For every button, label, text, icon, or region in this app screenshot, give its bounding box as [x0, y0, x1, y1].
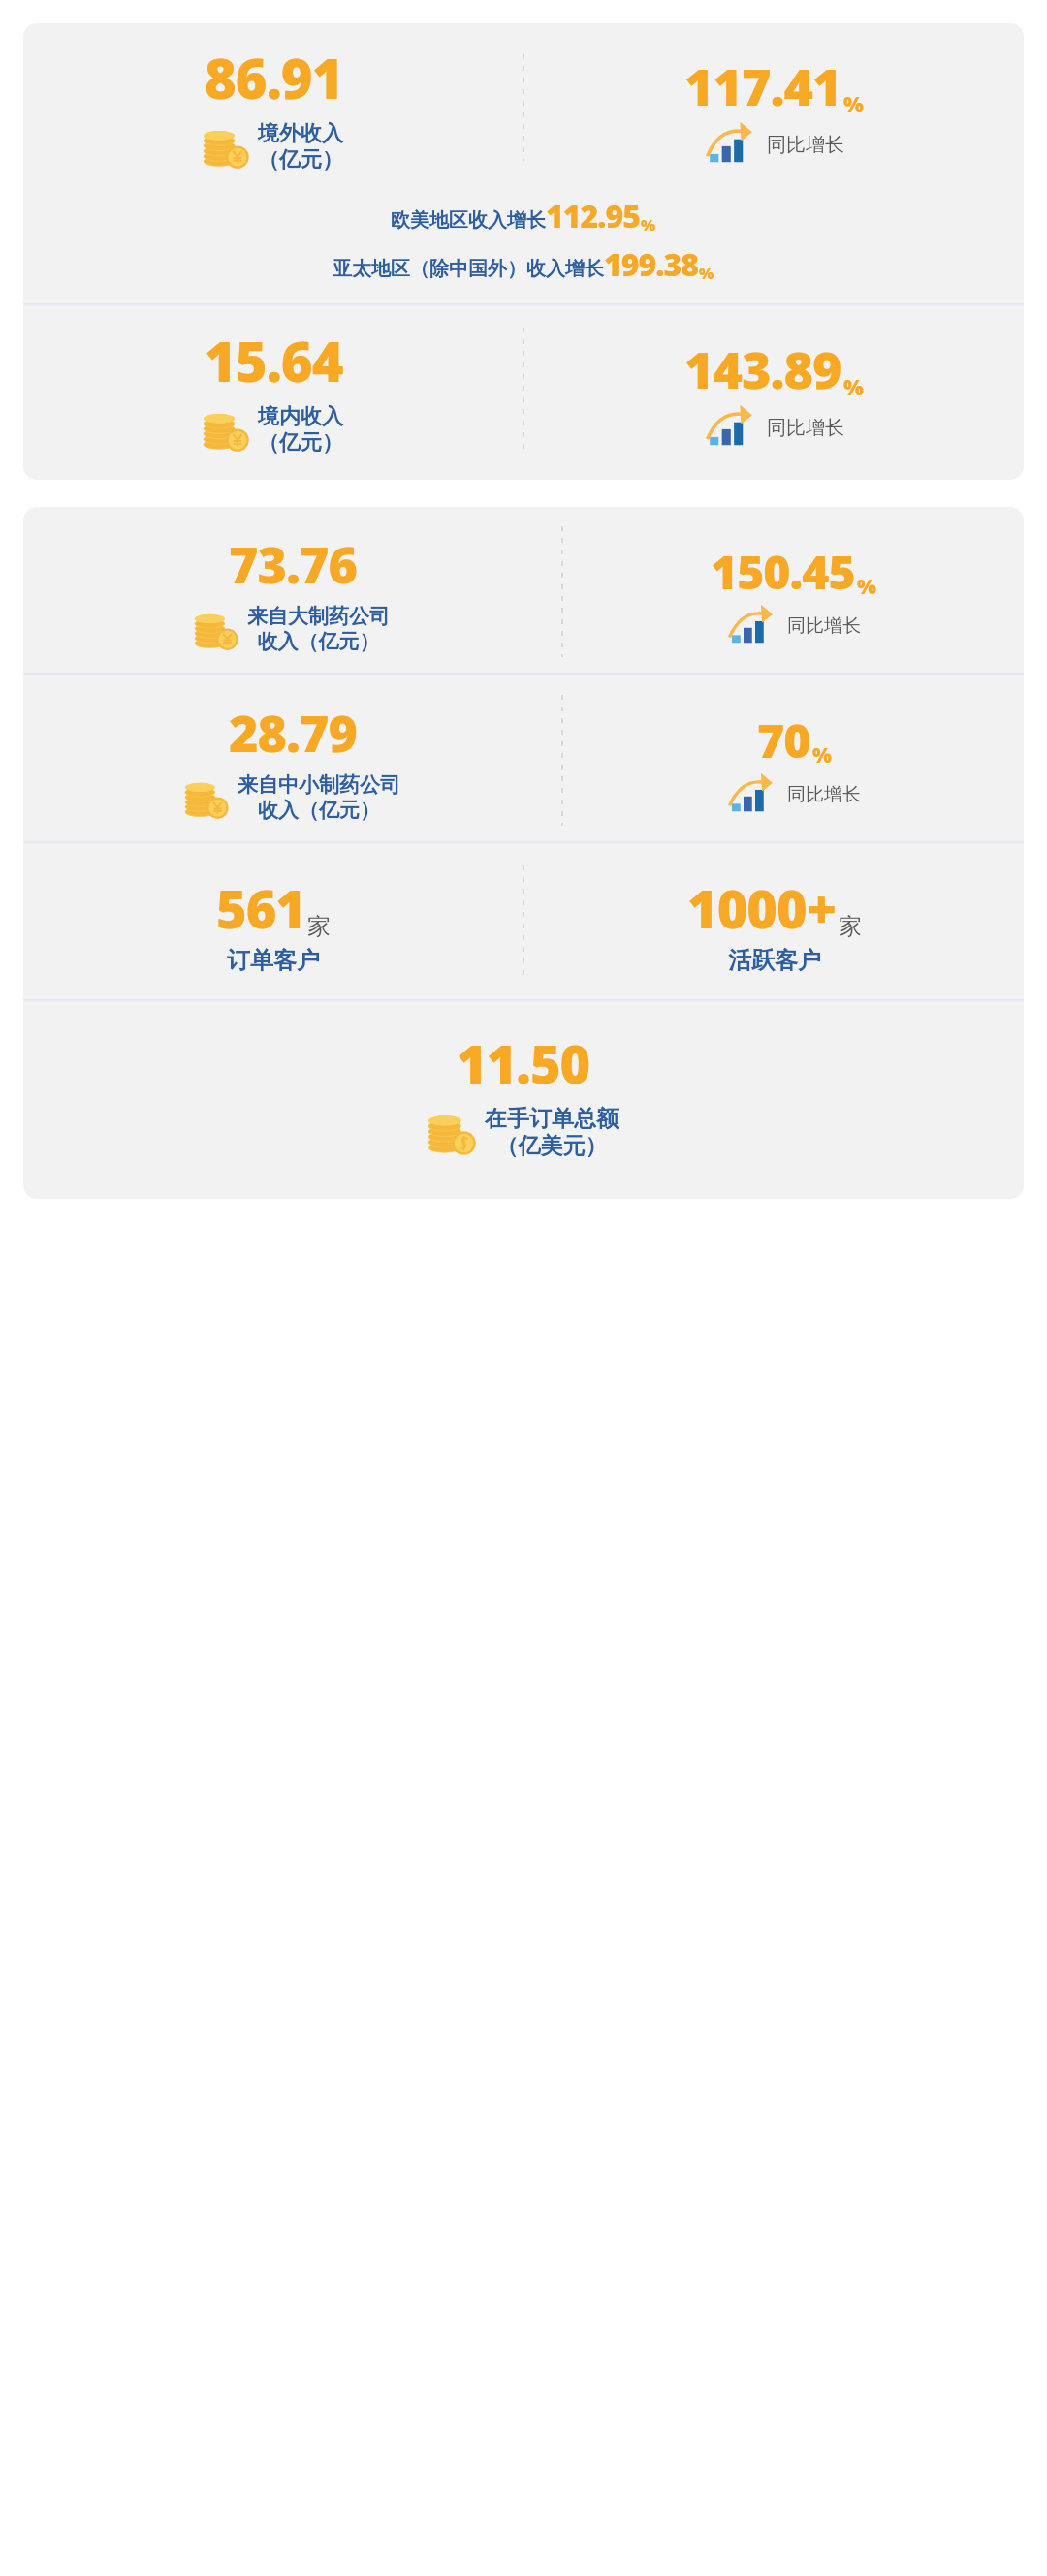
staticText: 订单客户 — [227, 946, 320, 975]
staticText: 家 — [307, 912, 331, 941]
other: Growth chart — [705, 126, 755, 163]
staticText: % — [843, 372, 864, 401]
button[interactable]: 11.50 — [428, 1027, 619, 1160]
other: Yuan coins — [185, 777, 228, 820]
button[interactable]: 70 — [727, 708, 861, 812]
staticText: 143.89 — [684, 334, 841, 403]
staticText: 同比增长 — [767, 416, 844, 440]
staticText: % — [812, 741, 832, 770]
staticText: 86.91 — [205, 41, 343, 114]
button[interactable]: 15.64 — [204, 324, 343, 456]
other: Dollar coins — [428, 1110, 475, 1156]
staticText: 15.64 — [205, 324, 343, 397]
staticText: 199.38 — [604, 243, 699, 286]
button[interactable]: 561 — [216, 872, 331, 975]
staticText: 117.41 — [684, 51, 841, 120]
staticText: 来自中小制药公司 收入（亿元） — [238, 772, 400, 824]
staticText: 70 — [757, 708, 810, 771]
staticText: 活跃客户 — [728, 946, 821, 975]
staticText: 同比增长 — [767, 133, 844, 157]
staticText: 欧美地区收入增长 — [391, 208, 546, 233]
staticText: 11.50 — [457, 1027, 590, 1099]
staticText: 亚太地区（除中国外）收入增长 — [333, 257, 604, 281]
staticText: 来自大制药公司 收入（亿元） — [247, 604, 390, 655]
other: Growth chart — [727, 777, 776, 812]
staticText: 1000+ — [687, 872, 837, 944]
staticText: 家 — [839, 912, 862, 941]
staticText: 境内收入 （亿元） — [258, 403, 343, 456]
staticText: 境外收入 （亿元） — [258, 120, 343, 173]
staticText: 28.79 — [229, 698, 357, 767]
button[interactable]: 117.41 — [684, 51, 864, 163]
staticText: 在手订单总额 （亿美元） — [485, 1105, 619, 1160]
other: Growth chart — [705, 409, 755, 446]
button[interactable]: 73.76 — [195, 529, 390, 655]
staticText: % — [641, 214, 656, 236]
staticText: 150.45 — [711, 540, 855, 603]
button[interactable]: 143.89 — [684, 334, 864, 446]
staticText: 同比增长 — [787, 614, 861, 638]
staticText: 同比增长 — [787, 783, 861, 806]
other: Yuan coins — [204, 408, 248, 453]
button[interactable]: 亚太地区（除中国外）收入增长 — [23, 243, 1024, 286]
other: Growth chart — [727, 609, 776, 644]
staticText: 561 — [216, 872, 305, 944]
other: Yuan coins — [204, 125, 248, 170]
other: Yuan coins — [195, 609, 238, 651]
button[interactable]: 28.79 — [185, 698, 400, 824]
staticText: % — [843, 89, 864, 118]
staticText: % — [857, 573, 876, 601]
staticText: 112.95 — [546, 195, 641, 237]
button[interactable]: 86.91 — [204, 41, 343, 173]
staticText: 73.76 — [229, 529, 357, 598]
staticText: % — [699, 263, 714, 284]
button[interactable]: 150.45 — [711, 540, 876, 644]
button[interactable]: 1000+ — [687, 872, 862, 975]
button[interactable]: 欧美地区收入增长 — [23, 195, 1024, 237]
